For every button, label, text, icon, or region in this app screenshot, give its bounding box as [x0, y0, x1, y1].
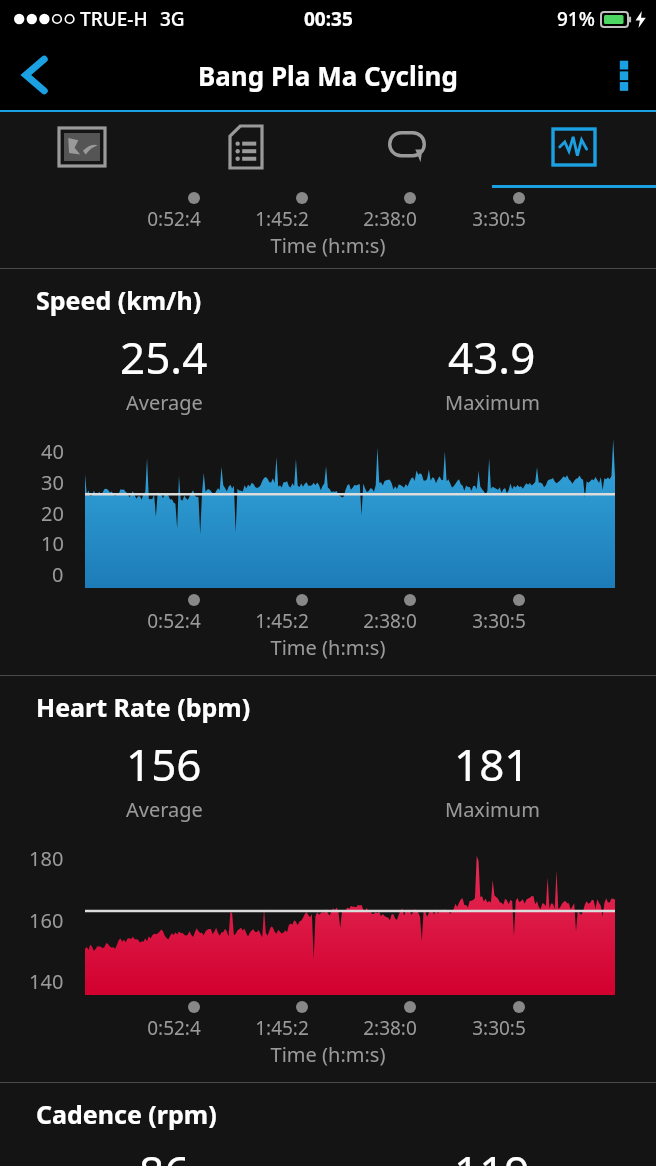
- staticText: 20: [41, 500, 64, 527]
- staticText: 180: [29, 845, 64, 872]
- staticText: 43.9: [448, 327, 536, 387]
- staticText: 30: [41, 469, 64, 496]
- staticText: 181: [454, 734, 530, 794]
- staticText: 3:30:5: [472, 206, 526, 232]
- staticText: 0:52:4: [147, 1015, 201, 1041]
- staticText: 25.4: [120, 327, 208, 387]
- staticText: 156: [126, 734, 202, 794]
- staticText: 0:52:4: [147, 608, 201, 634]
- button[interactable]: Laps: [328, 112, 492, 188]
- staticText: 2:38:0: [363, 608, 417, 634]
- staticText: TRUE-H: [80, 6, 148, 32]
- staticText: 0: [52, 561, 64, 588]
- staticText: 119: [454, 1141, 530, 1166]
- staticText: Time (h:m:s): [0, 1041, 656, 1068]
- staticText: Average: [126, 389, 203, 416]
- button[interactable]: More options: [592, 38, 656, 112]
- staticText: Bang Pla Ma Cycling: [198, 58, 458, 93]
- staticText: 1:45:2: [255, 206, 309, 232]
- staticText: Heart Rate (bpm): [36, 690, 251, 724]
- staticText: 00:35: [304, 6, 353, 32]
- button[interactable]: Charts: [492, 112, 656, 188]
- staticText: Time (h:m:s): [0, 232, 656, 259]
- staticText: 140: [29, 968, 64, 995]
- staticText: 0:52:4: [147, 206, 201, 232]
- staticText: 2:38:0: [363, 206, 417, 232]
- button[interactable]: Details: [164, 112, 328, 188]
- staticText: 2:38:0: [363, 1015, 417, 1041]
- staticText: Time (h:m:s): [0, 634, 656, 661]
- staticText: 1:45:2: [255, 1015, 309, 1041]
- staticText: Average: [126, 796, 203, 823]
- button[interactable]: Back: [0, 38, 70, 112]
- staticText: Maximum: [445, 796, 540, 823]
- staticText: 160: [29, 907, 64, 934]
- staticText: Maximum: [445, 389, 540, 416]
- staticText: 86: [139, 1141, 190, 1166]
- staticText: 40: [41, 438, 64, 465]
- staticText: 10: [41, 530, 64, 557]
- staticText: 91%: [557, 6, 595, 32]
- staticText: Cadence (rpm): [36, 1097, 217, 1131]
- staticText: Speed (km/h): [36, 283, 202, 317]
- staticText: 3:30:5: [472, 608, 526, 634]
- staticText: 3G: [160, 6, 185, 32]
- staticText: 3:30:5: [472, 1015, 526, 1041]
- button[interactable]: Map: [0, 112, 164, 188]
- staticText: 1:45:2: [255, 608, 309, 634]
